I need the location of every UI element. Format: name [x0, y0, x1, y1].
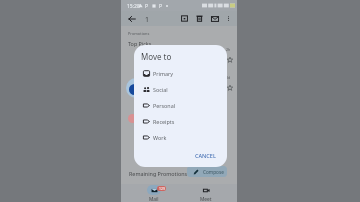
staticText: Mail — [149, 196, 159, 202]
staticText: Receipts — [153, 118, 175, 125]
staticText: Personal — [153, 102, 176, 109]
button[interactable]: Meet — [192, 184, 220, 202]
staticText: Social — [153, 86, 168, 93]
button[interactable]: Social — [134, 81, 227, 97]
staticText: Top Picks — [128, 40, 152, 47]
staticText: Work — [153, 134, 167, 141]
button[interactable]: Back — [126, 13, 137, 24]
staticText: Primary — [153, 70, 173, 77]
staticText: 1 — [145, 15, 150, 25]
staticText: Promotions — [128, 31, 150, 36]
button[interactable]: More options — [223, 13, 234, 24]
staticText: CANCEL — [195, 152, 216, 159]
button[interactable]: Delete — [194, 13, 205, 24]
staticText: 2h — [226, 47, 231, 52]
staticText: Meet — [200, 196, 212, 202]
staticText: 3d — [226, 75, 231, 80]
staticText: P — [159, 3, 163, 10]
button[interactable]: Primary — [134, 65, 227, 81]
staticText: 15:28 — [127, 3, 140, 10]
button[interactable]: Work — [134, 129, 227, 145]
button[interactable]: CANCEL — [188, 149, 223, 162]
staticText: P — [145, 3, 149, 10]
staticText: 129 — [159, 186, 165, 191]
button[interactable]: Receipts — [134, 113, 227, 129]
staticText: Move to — [141, 51, 172, 62]
button[interactable]: Personal — [134, 97, 227, 113]
button[interactable]: 129 — [140, 184, 168, 202]
button[interactable]: Compose — [187, 166, 227, 177]
staticText: Remaining Promotions — [129, 170, 188, 177]
button[interactable]: Mark as unread — [209, 13, 220, 24]
staticText: Compose — [203, 169, 224, 175]
button[interactable]: Archive — [179, 13, 190, 24]
